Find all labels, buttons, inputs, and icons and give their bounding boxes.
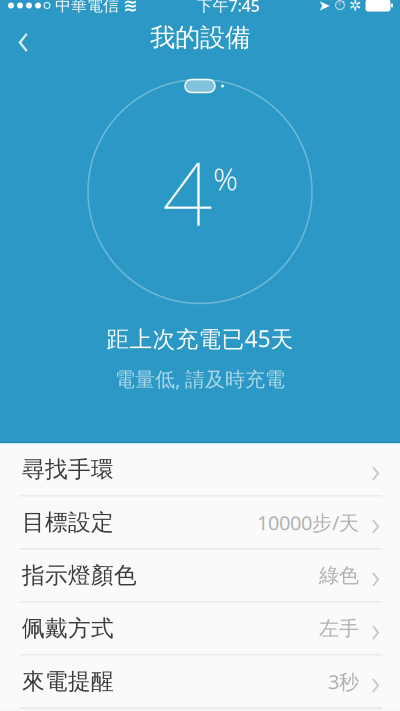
- button[interactable]: 指示燈顏色: [0, 549, 400, 602]
- staticText: 4: [162, 133, 212, 250]
- staticText: ›: [371, 552, 380, 598]
- staticText: 10000步/天: [257, 509, 359, 536]
- button[interactable]: 來電提醒: [0, 655, 400, 708]
- button[interactable]: 目標設定: [0, 496, 400, 549]
- staticText: 電量低, 請及時充電: [115, 366, 285, 392]
- staticText: 我的設備: [150, 22, 250, 53]
- staticText: 下午7:45: [196, 0, 259, 16]
- staticText: ≋: [123, 0, 138, 15]
- staticText: 指示燈顏色: [22, 562, 137, 589]
- staticText: 距上次充電已45天: [106, 323, 293, 354]
- staticText: 3秒: [328, 668, 359, 695]
- staticText: ‹: [17, 7, 29, 68]
- staticText: ➤: [318, 0, 330, 14]
- staticText: ⏱: [334, 0, 345, 13]
- staticText: 尋找手環: [22, 456, 114, 483]
- staticText: 佩戴方式: [22, 615, 114, 642]
- staticText: 中華電信: [55, 0, 119, 15]
- staticText: 來電提醒: [22, 668, 114, 695]
- staticText: ›: [371, 658, 380, 704]
- staticText: ›: [371, 499, 380, 545]
- staticText: %: [213, 158, 238, 199]
- button[interactable]: Back: [0, 16, 46, 58]
- button[interactable]: 佩戴方式: [0, 602, 400, 655]
- staticText: ›: [371, 446, 380, 492]
- staticText: 綠色: [319, 563, 359, 588]
- staticText: ✲: [349, 0, 361, 14]
- staticText: 左手: [319, 616, 359, 641]
- staticText: ›: [371, 605, 380, 651]
- staticText: 目標設定: [22, 509, 114, 536]
- button[interactable]: 尋找手環: [0, 443, 400, 496]
